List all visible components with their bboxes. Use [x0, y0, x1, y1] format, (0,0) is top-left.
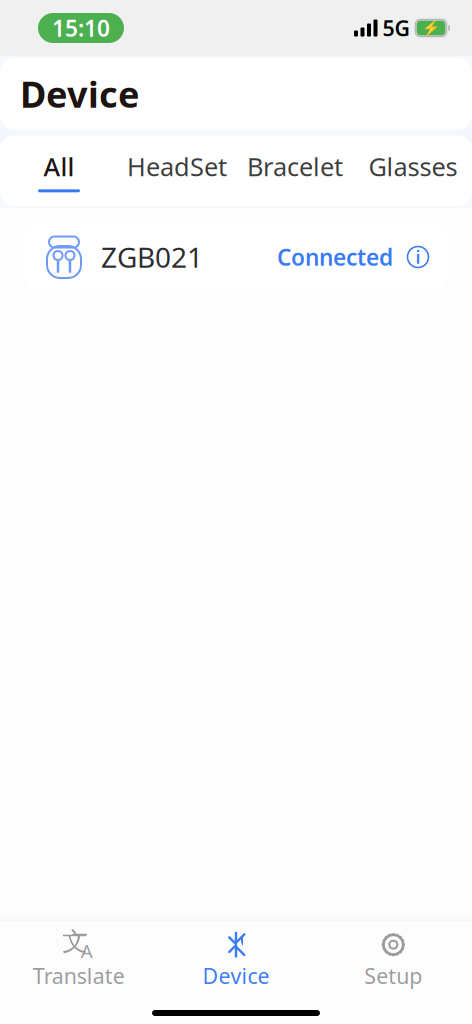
button[interactable]: Setup	[315, 921, 472, 1002]
staticText: All	[43, 150, 74, 183]
staticText: A	[81, 938, 93, 963]
staticText: 5G	[382, 14, 409, 42]
staticText: Setup	[364, 962, 422, 990]
staticText: i	[415, 245, 420, 268]
staticText: Bracelet	[247, 150, 343, 183]
staticText: ⚡	[422, 20, 440, 36]
staticText: Translate	[33, 962, 125, 990]
staticText: ZGB021	[101, 238, 203, 276]
button[interactable]: Bracelet	[236, 136, 354, 206]
staticText: Device	[20, 70, 139, 118]
button[interactable]: HeadSet	[118, 136, 236, 206]
button[interactable]: ZGB021	[25, 224, 447, 290]
button[interactable]: Device	[157, 921, 315, 1002]
staticText: HeadSet	[127, 150, 227, 183]
staticText: 文	[62, 926, 87, 957]
button[interactable]: Glasses	[354, 136, 472, 206]
staticText: 15:10	[52, 13, 110, 43]
button[interactable]: 文	[0, 921, 157, 1002]
staticText: Connected	[277, 242, 393, 272]
staticText: Device	[202, 962, 269, 990]
button[interactable]: All	[0, 136, 118, 206]
staticText: Glasses	[368, 150, 457, 183]
